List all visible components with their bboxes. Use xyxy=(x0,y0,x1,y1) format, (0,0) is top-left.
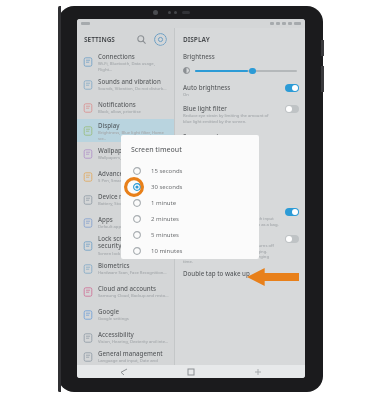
staticText: Biometrics xyxy=(98,261,130,269)
button[interactable]: Home xyxy=(171,365,211,378)
staticText: Advanced features xyxy=(98,169,154,177)
staticText: Brightness xyxy=(183,52,215,60)
staticText: Double tap to wake up xyxy=(183,269,250,277)
staticText: Show a screen saver while the screen tur… xyxy=(183,243,274,264)
button[interactable]: 10 minutes xyxy=(131,243,259,259)
button[interactable]: Blue light filter xyxy=(175,104,305,124)
button[interactable]: Cloud and accounts xyxy=(77,280,174,303)
staticText: Accessibility xyxy=(98,330,134,338)
staticText: Reduce eye strain by limiting the amount… xyxy=(183,113,269,124)
button[interactable]: Lock screen and security xyxy=(77,234,174,257)
button[interactable]: 2 minutes xyxy=(131,211,259,227)
button[interactable]: Back xyxy=(238,365,278,378)
staticText: Display xyxy=(98,121,120,129)
staticText: Hardware Scan, Face Recognition… xyxy=(98,270,167,276)
staticText: 15 seconds xyxy=(151,167,183,175)
button[interactable]: Screen timeout xyxy=(175,185,305,200)
button[interactable]: 30 seconds xyxy=(131,179,259,195)
staticText: 2 minutes xyxy=(151,215,179,223)
staticText: Wallpapers, Themes, Icons xyxy=(98,155,151,161)
button[interactable]: Accessibility xyxy=(77,326,174,349)
button[interactable]: Block accidental touches xyxy=(285,208,299,216)
button[interactable]: Auto brightness xyxy=(175,83,305,98)
staticText: Battery, Storage, Memory xyxy=(98,201,149,207)
button[interactable]: 5 minutes xyxy=(131,227,259,243)
staticText: Screen timeout xyxy=(131,145,182,155)
staticText: 1 minute xyxy=(151,199,177,207)
staticText: Screen lock type, Fingerprints… xyxy=(98,251,160,257)
staticText: Sounds and vibration xyxy=(98,77,161,85)
staticText: Apps xyxy=(98,215,113,223)
button[interactable]: Apps xyxy=(77,211,174,234)
staticText: Lock screen and security xyxy=(98,234,170,250)
button[interactable] xyxy=(183,67,297,74)
staticText: Blue light filter xyxy=(183,104,227,112)
staticText: Wi-Fi, Bluetooth, Data usage, Flight… xyxy=(98,61,170,72)
button[interactable]: General management xyxy=(77,349,174,365)
button[interactable]: Block accidental touches xyxy=(175,207,305,227)
button[interactable]: Screen saver xyxy=(175,234,305,264)
button[interactable]: Auto brightness xyxy=(285,84,299,92)
button[interactable]: Screen zoom and font xyxy=(175,153,305,161)
button[interactable]: Notifications xyxy=(77,96,174,119)
button[interactable]: Blue light filter xyxy=(285,105,299,113)
staticText: DISPLAY xyxy=(183,35,210,44)
staticText: Vision, Hearing, Dexterity and inte… xyxy=(98,339,169,345)
staticText: On xyxy=(183,92,189,98)
staticText: 5 minutes xyxy=(151,231,179,239)
button[interactable]: Search xyxy=(134,32,148,46)
staticText: Google settings xyxy=(98,316,129,322)
button[interactable]: 15 seconds xyxy=(131,163,259,179)
staticText: Notifications xyxy=(98,100,136,108)
staticText: 10 minutes xyxy=(151,247,183,255)
staticText: Device maintenance xyxy=(98,192,158,200)
staticText: SETTINGS xyxy=(84,35,115,44)
button[interactable]: Connections xyxy=(77,50,174,73)
button[interactable]: Recents xyxy=(104,365,144,378)
staticText: Google xyxy=(98,307,120,315)
staticText: Block, allow, prioritise xyxy=(98,109,141,115)
staticText: Default apps, App permissions xyxy=(98,224,158,230)
button[interactable]: Display xyxy=(77,119,174,142)
button[interactable]: Screen saver xyxy=(285,235,299,243)
button[interactable]: Biometrics xyxy=(77,257,174,280)
button[interactable]: Settings options xyxy=(153,32,167,46)
button[interactable]: 1 minute xyxy=(131,195,259,211)
button[interactable]: Icon frames xyxy=(175,167,305,175)
button[interactable]: Wallpapers and themes xyxy=(77,142,174,165)
staticText: S Pen, Smart stay, Game… xyxy=(98,178,150,184)
staticText: Auto brightness xyxy=(183,83,231,91)
button[interactable]: Sounds and vibration xyxy=(77,73,174,96)
staticText: Prevent the screen from detecting touch … xyxy=(183,216,279,227)
staticText: Language and input, Date and time… xyxy=(98,358,170,365)
button[interactable]: Advanced features xyxy=(77,165,174,188)
button[interactable]: Device maintenance xyxy=(77,188,174,211)
staticText: Connections xyxy=(98,52,135,60)
button[interactable]: Screen mode xyxy=(175,132,305,147)
staticText: 30 seconds xyxy=(151,183,183,191)
button[interactable]: Google xyxy=(77,303,174,326)
staticText: Samsung Cloud, Backup and resto… xyxy=(98,293,169,299)
staticText: Brightness, Blue light filter, Home scr… xyxy=(98,130,170,141)
staticText: Wallpapers and themes xyxy=(98,146,168,154)
staticText: Screen mode xyxy=(183,132,222,140)
staticText: Cloud and accounts xyxy=(98,284,157,292)
staticText: General management xyxy=(98,349,163,357)
staticText: Sounds, Vibration, Do not disturb… xyxy=(98,86,167,92)
